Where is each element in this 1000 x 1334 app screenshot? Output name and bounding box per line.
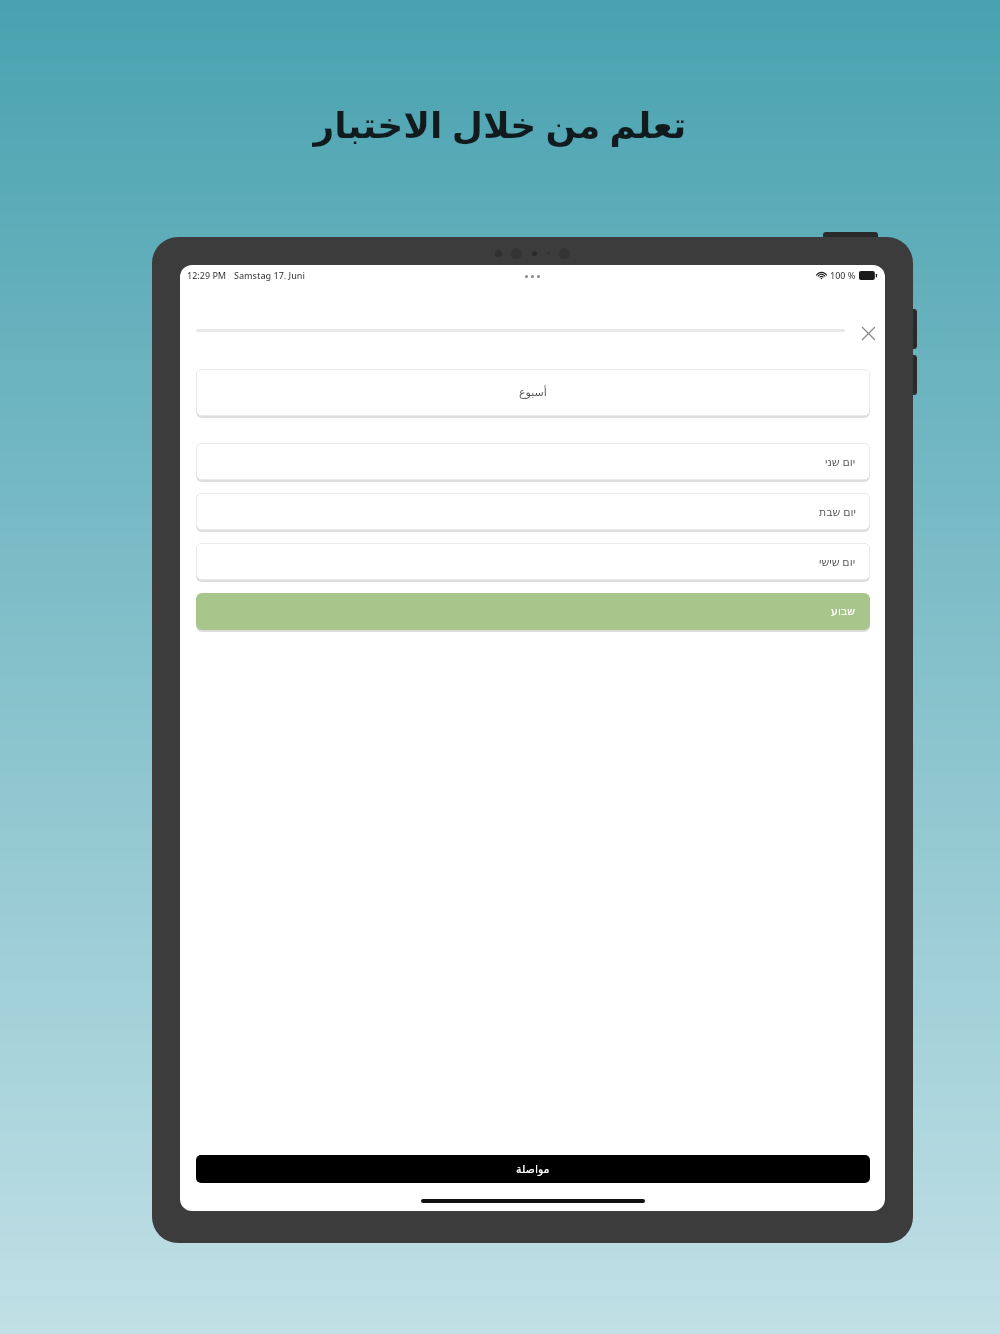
button[interactable]: Close xyxy=(856,321,880,345)
staticText: تعلم من خلال الاختبار xyxy=(0,100,1000,149)
staticText: أسبوع xyxy=(519,386,547,399)
staticText: 12:29 PM xyxy=(187,269,227,281)
staticText: مواصلة xyxy=(516,1163,550,1176)
button[interactable]: أسبوع xyxy=(196,369,870,416)
staticText: יום שני xyxy=(825,454,856,469)
staticText: Samstag 17. Juni xyxy=(234,269,305,281)
button[interactable]: יום שישי xyxy=(196,543,870,580)
staticText: יום שישי xyxy=(819,554,856,569)
button[interactable]: مواصلة xyxy=(196,1155,870,1183)
button[interactable]: יום שבת xyxy=(196,493,870,530)
button[interactable]: יום שני xyxy=(196,443,870,480)
staticText: 100 % xyxy=(830,269,856,281)
staticText: שבוע xyxy=(831,605,856,618)
button[interactable]: שבוע xyxy=(196,593,870,630)
staticText: יום שבת xyxy=(819,504,856,519)
